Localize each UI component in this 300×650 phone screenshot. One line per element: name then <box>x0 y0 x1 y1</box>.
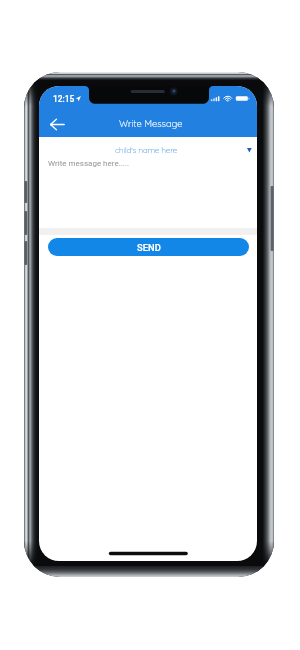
staticText: Write message here..... <box>48 159 130 168</box>
staticText: SEND <box>137 242 161 253</box>
staticText: Write Message <box>119 118 183 130</box>
staticText: child's name here <box>115 145 178 155</box>
button[interactable]: child's name here <box>39 137 257 159</box>
staticText: 12:15 <box>53 94 75 104</box>
button[interactable]: Back <box>46 115 68 134</box>
button[interactable]: SEND <box>48 238 249 256</box>
